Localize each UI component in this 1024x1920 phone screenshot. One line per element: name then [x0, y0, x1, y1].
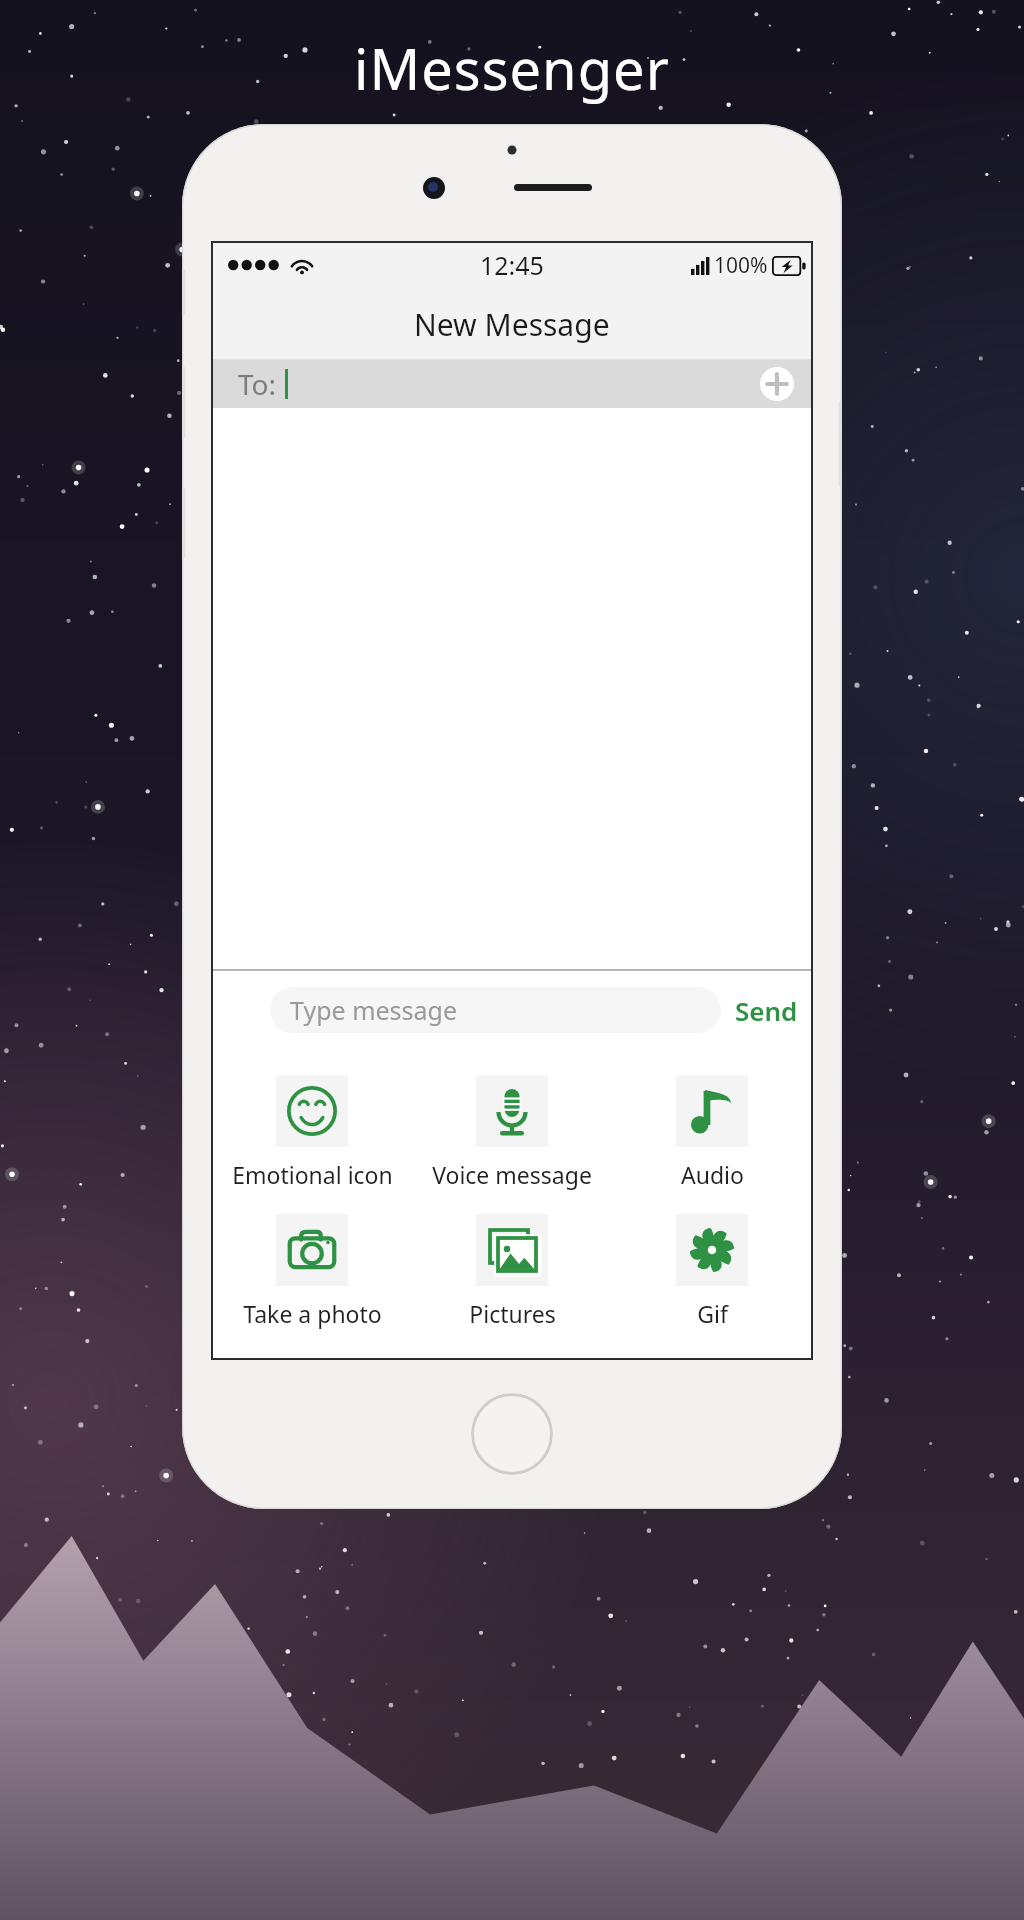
button[interactable]: Take a photo	[212, 1214, 412, 1329]
staticText: To:	[238, 365, 277, 403]
staticText: Voice message	[432, 1159, 592, 1190]
staticText: Audio	[681, 1159, 744, 1190]
button[interactable]: Home	[471, 1393, 553, 1475]
staticText: iMessenger	[354, 30, 670, 106]
button[interactable]: Type message	[270, 987, 721, 1033]
button[interactable]: Send	[735, 993, 798, 1028]
staticText: New Message	[414, 304, 610, 345]
staticText: 12:45	[480, 248, 544, 282]
button[interactable]: Emotional icon	[212, 1075, 412, 1190]
staticText: Send	[735, 993, 798, 1028]
button[interactable]: Audio	[612, 1075, 812, 1190]
staticText: Type message	[290, 993, 458, 1027]
button[interactable]: Add contact	[760, 367, 794, 401]
staticText: 100%	[714, 251, 768, 280]
button[interactable]: Gif	[612, 1214, 812, 1329]
staticText: Emotional icon	[232, 1159, 393, 1190]
button[interactable]: Pictures	[412, 1214, 612, 1329]
staticText: Pictures	[469, 1298, 556, 1329]
staticText: Take a photo	[243, 1298, 382, 1329]
button[interactable]: To:	[212, 360, 812, 408]
staticText: Gif	[697, 1298, 728, 1329]
button[interactable]: Voice message	[412, 1075, 612, 1190]
